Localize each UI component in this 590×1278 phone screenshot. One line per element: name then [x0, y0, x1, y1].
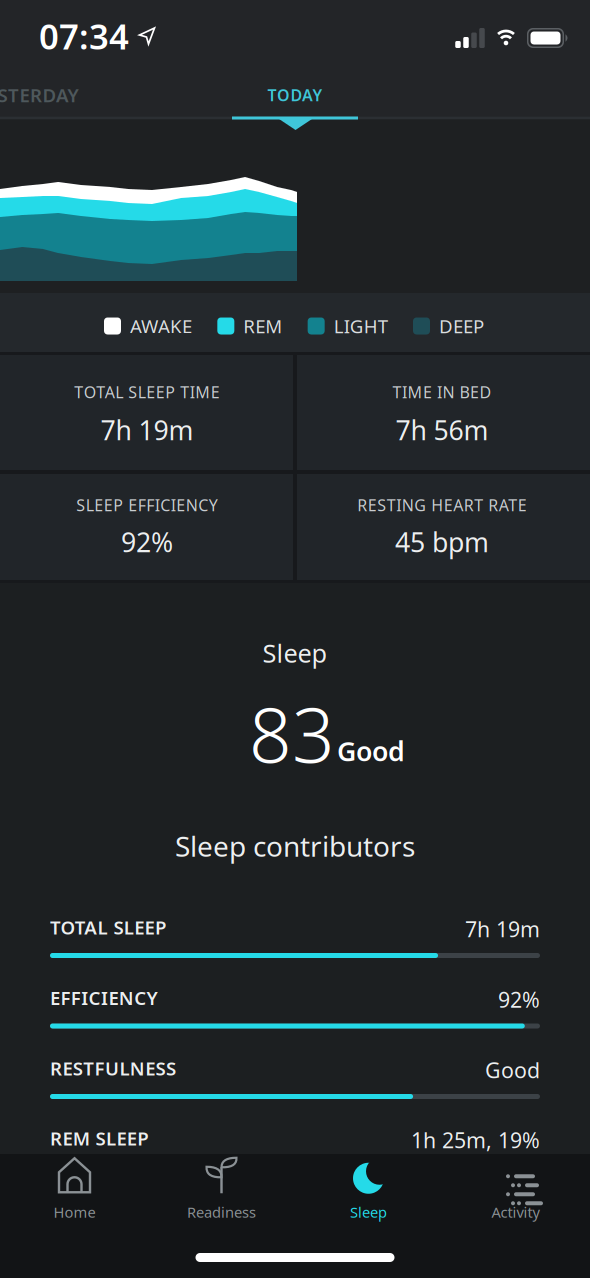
button[interactable]: Readiness — [148, 1146, 295, 1232]
staticText: 7h 56m — [395, 412, 488, 448]
staticText: Activity — [491, 1202, 539, 1222]
button[interactable]: TODAY — [267, 84, 322, 106]
button[interactable]: YESTERDAY — [0, 83, 78, 107]
staticText: REM — [243, 314, 282, 338]
staticText: 7h 19m — [100, 412, 193, 448]
staticText: AWAKE — [130, 314, 192, 338]
staticText: 1h 25m, 19% — [411, 1126, 540, 1154]
button[interactable]: Activity — [442, 1146, 589, 1232]
staticText: 92% — [121, 524, 173, 560]
staticText: Readiness — [187, 1202, 256, 1222]
staticText: EFFICIENCY — [50, 985, 158, 1010]
staticText: Sleep — [350, 1202, 387, 1222]
staticText: SLEEP EFFICIENCY — [76, 494, 218, 516]
staticText: RESTFULNESS — [50, 1056, 176, 1081]
staticText: Sleep — [262, 636, 327, 670]
button[interactable]: Home — [1, 1146, 148, 1232]
staticText: 45 bpm — [395, 524, 489, 560]
staticText: 7h 19m — [465, 915, 540, 943]
button[interactable]: Sleep — [295, 1146, 442, 1232]
staticText: Good — [337, 733, 405, 769]
staticText: REM SLEEP — [50, 1126, 148, 1151]
staticText: TODAY — [267, 84, 322, 106]
staticText: Sleep contributors — [175, 827, 415, 865]
staticText: TOTAL SLEEP — [50, 915, 166, 940]
staticText: 92% — [498, 985, 540, 1014]
staticText: YESTERDAY — [0, 83, 78, 107]
staticText: RESTING HEART RATE — [357, 494, 527, 516]
staticText: 07:34 — [39, 13, 129, 59]
staticText: DEEP — [439, 314, 484, 338]
staticText: TOTAL SLEEP TIME — [74, 381, 220, 403]
staticText: LIGHT — [334, 314, 388, 338]
staticText: Home — [53, 1202, 95, 1222]
staticText: 83 — [249, 684, 335, 783]
staticText: TIME IN BED — [392, 381, 491, 403]
staticText: Good — [485, 1056, 540, 1084]
